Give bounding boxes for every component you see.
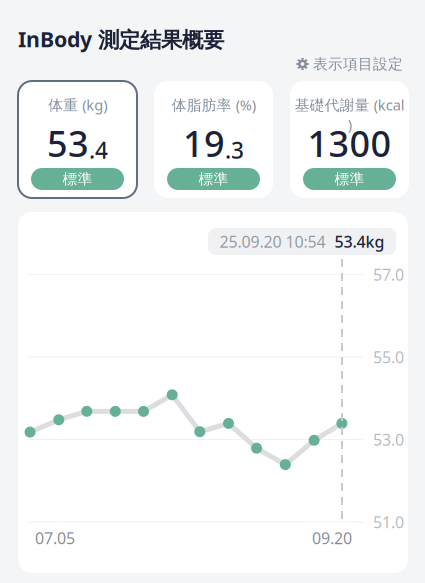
button[interactable]: 体脂肪率 (%) <box>154 81 273 198</box>
staticText: .4 <box>89 135 108 165</box>
staticText: 53 <box>47 119 89 167</box>
staticText: 19 <box>183 119 225 167</box>
staticText: InBody 測定結果概要 <box>18 25 224 53</box>
staticText: 基礎代謝量 (kcal ) <box>294 95 404 134</box>
staticText: 表示項目設定 <box>313 55 403 73</box>
staticText: 09.20 <box>312 527 352 549</box>
staticText: .3 <box>225 135 244 165</box>
staticText: 53.4kg <box>334 231 384 252</box>
staticText: 07.05 <box>35 527 75 549</box>
staticText: 25.09.20 10:54 <box>219 231 325 252</box>
staticText: 51.0 <box>373 511 404 533</box>
staticText: 53.0 <box>373 429 404 450</box>
staticText: 体重 (kg) <box>48 95 107 114</box>
staticText: 体脂肪率 (%) <box>171 95 255 114</box>
staticText: 55.0 <box>373 346 404 368</box>
button[interactable]: 表示項目設定 <box>296 55 403 73</box>
staticText: 1300 <box>307 119 391 167</box>
staticText: 標準 <box>334 170 364 188</box>
staticText: 標準 <box>198 170 228 188</box>
button[interactable]: 基礎代謝量 (kcal ) <box>290 81 409 198</box>
staticText: 標準 <box>62 170 92 188</box>
staticText: 57.0 <box>373 264 404 285</box>
button[interactable]: 体重 (kg) <box>18 81 137 198</box>
